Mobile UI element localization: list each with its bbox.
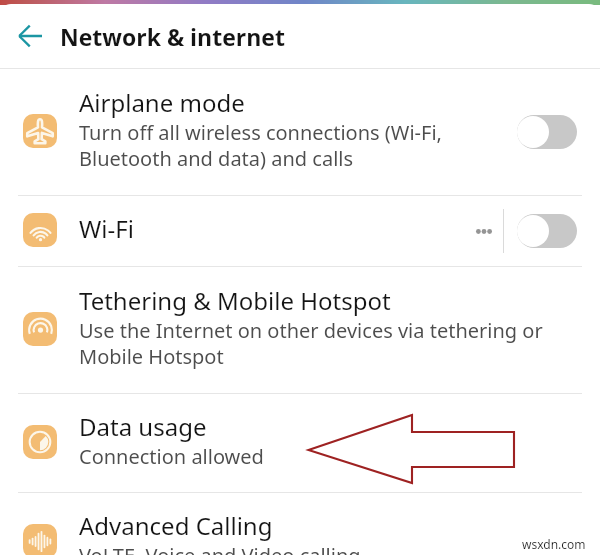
button[interactable]: More options: [465, 196, 503, 266]
staticText: Connection allowed: [79, 443, 264, 470]
staticText: wsxdn.com: [522, 536, 586, 552]
button[interactable]: Data usage: [0, 394, 600, 492]
staticText: VoLTE, Voice and Video calling: [79, 542, 361, 555]
staticText: Use the Internet on other devices via te…: [79, 317, 543, 370]
staticText: Tethering & Mobile Hotspot: [79, 284, 391, 317]
staticText: Network & internet: [60, 21, 285, 52]
staticText: Wi-Fi: [79, 212, 134, 245]
button[interactable]: Back: [0, 4, 60, 68]
staticText: Advanced Calling: [79, 509, 273, 542]
button[interactable]: Tethering & Mobile Hotspot: [0, 267, 600, 393]
button[interactable]: Wi-Fi: [0, 196, 600, 266]
staticText: Airplane mode: [79, 86, 245, 119]
button[interactable]: Airplane mode: [0, 69, 600, 195]
button[interactable]: Toggle Airplane mode: [517, 115, 577, 149]
button[interactable]: Advanced Calling: [0, 493, 600, 555]
button[interactable]: Toggle Wi-Fi: [517, 214, 577, 248]
staticText: Data usage: [79, 410, 207, 443]
staticText: Turn off all wireless connections (Wi-Fi…: [79, 119, 442, 172]
